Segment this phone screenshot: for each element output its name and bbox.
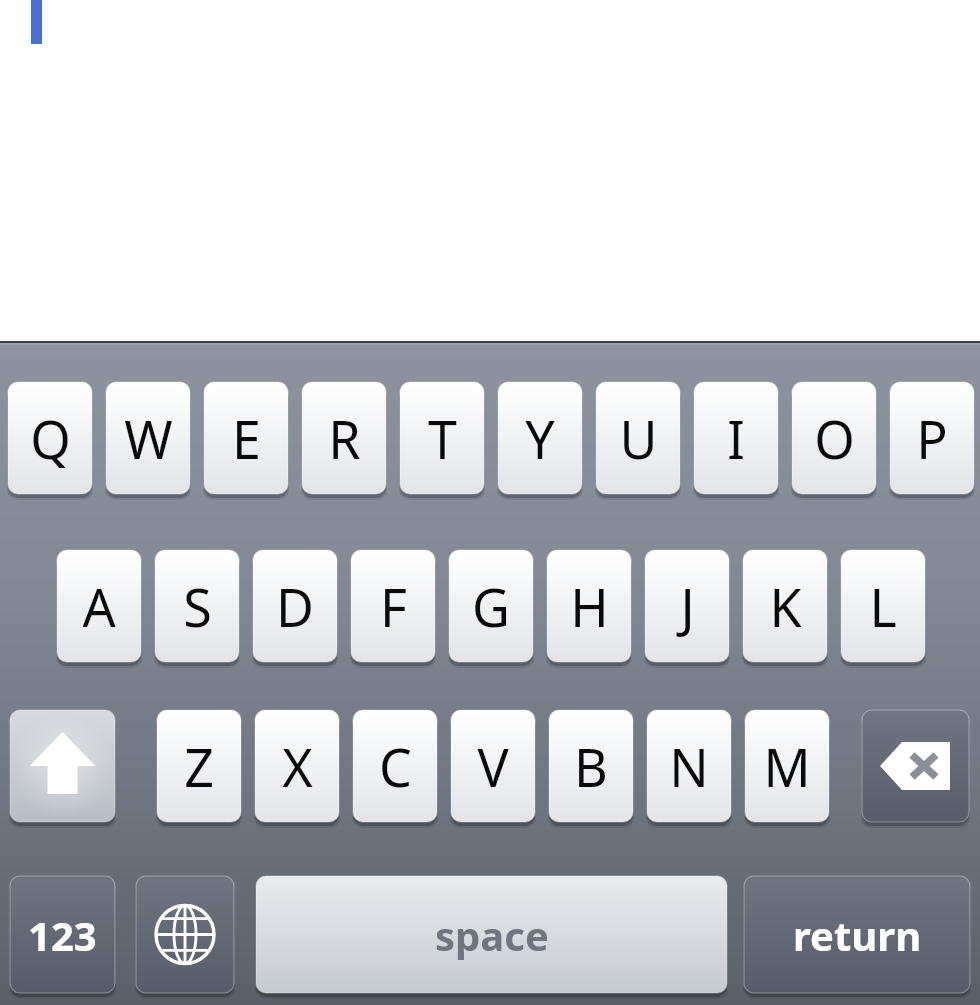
button[interactable]: 123 — [10, 876, 115, 993]
button[interactable]: F — [351, 550, 435, 662]
staticText: G — [472, 571, 510, 642]
button[interactable]: V — [451, 710, 535, 822]
button[interactable]: P — [890, 382, 974, 494]
button[interactable]: N — [647, 710, 731, 822]
button[interactable]: return — [744, 876, 970, 993]
staticText: D — [276, 571, 314, 642]
staticText: V — [477, 731, 509, 802]
staticText: E — [232, 403, 261, 474]
button[interactable]: U — [596, 382, 680, 494]
staticText: O — [814, 403, 855, 474]
button[interactable]: W — [106, 382, 190, 494]
staticText: A — [82, 571, 116, 642]
staticText: Z — [184, 731, 214, 802]
button[interactable]: O — [792, 382, 876, 494]
staticText: U — [619, 403, 658, 474]
button[interactable]: R — [302, 382, 386, 494]
staticText: X — [282, 731, 313, 802]
staticText: N — [669, 731, 709, 802]
button[interactable]: D — [253, 550, 337, 662]
button[interactable]: C — [353, 710, 437, 822]
staticText: return — [793, 908, 922, 962]
button[interactable]: X — [255, 710, 339, 822]
button[interactable]: L — [841, 550, 925, 662]
staticText: M — [763, 731, 811, 802]
button[interactable]: J — [645, 550, 729, 662]
staticText: K — [769, 571, 802, 642]
staticText: Q — [30, 403, 71, 474]
button[interactable]: M — [745, 710, 829, 822]
button[interactable]: A — [57, 550, 141, 662]
staticText: F — [380, 571, 407, 642]
staticText: L — [869, 571, 897, 642]
button[interactable]: B — [549, 710, 633, 822]
staticText: T — [428, 403, 457, 474]
button[interactable]: H — [547, 550, 631, 662]
staticText: W — [124, 403, 173, 474]
button[interactable]: I — [694, 382, 778, 494]
button[interactable]: space — [256, 876, 727, 993]
button[interactable]: Q — [8, 382, 92, 494]
staticText: R — [328, 403, 361, 474]
button[interactable]: Change keyboard language — [136, 876, 234, 993]
button[interactable]: G — [449, 550, 533, 662]
button[interactable]: S — [155, 550, 239, 662]
staticText: space — [435, 908, 549, 962]
button[interactable]: E — [204, 382, 288, 494]
staticText: J — [680, 571, 695, 642]
button[interactable]: T — [400, 382, 484, 494]
staticText: I — [727, 403, 745, 474]
staticText: P — [916, 403, 948, 474]
button[interactable]: Backspace — [862, 710, 969, 822]
staticText: S — [183, 571, 212, 642]
staticText: 123 — [28, 908, 97, 962]
button[interactable]: Shift — [10, 710, 115, 822]
button[interactable]: K — [743, 550, 827, 662]
staticText: B — [574, 731, 608, 802]
button[interactable]: Y — [498, 382, 582, 494]
button[interactable]: Z — [157, 710, 241, 822]
staticText: H — [570, 571, 609, 642]
staticText: Y — [525, 403, 555, 474]
staticText: C — [379, 731, 412, 802]
